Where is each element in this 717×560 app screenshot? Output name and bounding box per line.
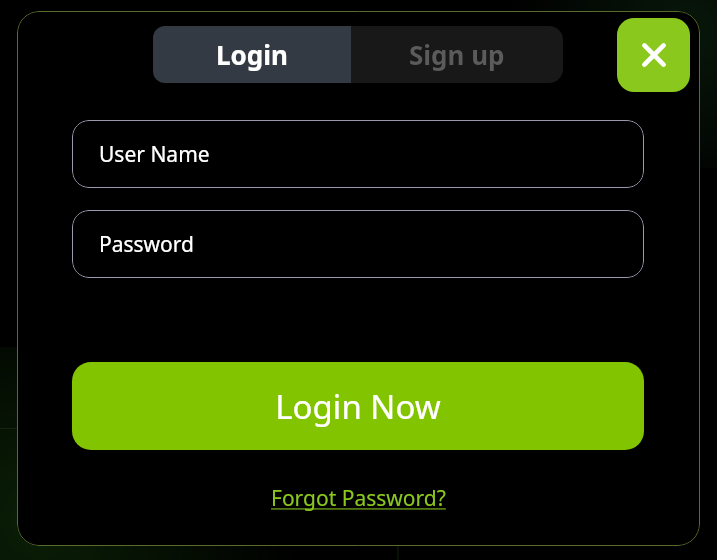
staticText: Login — [216, 37, 288, 72]
staticText: Sign up — [409, 37, 505, 72]
button[interactable]: User Name — [72, 120, 644, 188]
staticText: Password — [99, 230, 194, 259]
button[interactable]: Password — [72, 210, 644, 278]
staticText: Forgot Password? — [271, 484, 446, 513]
button[interactable]: Close — [617, 18, 690, 92]
button[interactable]: Sign up — [351, 26, 563, 83]
button[interactable]: Login Now — [72, 362, 644, 450]
staticText: Login Now — [275, 384, 441, 429]
button[interactable]: Forgot Password? — [265, 480, 452, 517]
button[interactable]: Login — [153, 26, 351, 83]
staticText: User Name — [99, 140, 210, 169]
